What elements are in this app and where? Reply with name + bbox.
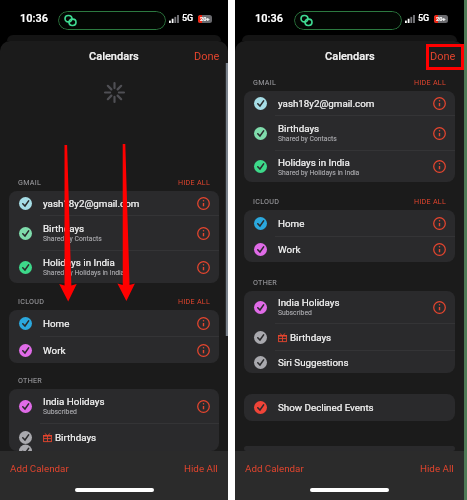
button[interactable]: Birthdays [9,216,219,250]
staticText: Work [278,244,301,255]
button[interactable]: Info [429,213,450,234]
button[interactable]: India Holidays [244,291,455,323]
button[interactable]: Info [193,396,214,417]
staticText: Shared by Contacts [43,235,102,243]
staticText: yash18y2@gmail.com [43,198,140,209]
button[interactable]: Info [193,223,214,244]
button[interactable]: Hide All [420,463,454,474]
button[interactable]: yash18y2@gmail.com [9,191,219,215]
button[interactable]: Done [194,50,220,63]
staticText: India Holidays [278,297,340,308]
other: Info [197,317,210,330]
button[interactable]: Work [244,237,455,262]
staticText: Add Calendar [10,463,69,474]
other: Info [197,227,210,240]
button[interactable]: Birthdays [244,116,455,150]
staticText: Done [194,50,220,63]
staticText: HIDE ALL [414,197,447,205]
other: Info [197,344,210,357]
staticText: ICLOUD [18,297,45,305]
button[interactable]: Info [429,239,450,260]
button[interactable]: Holidays in India [9,251,219,283]
other: Info [433,301,446,314]
staticText: 10:36 [255,12,283,25]
button[interactable]: Birthdays [244,324,455,350]
button[interactable]: HIDE ALL [414,78,447,86]
staticText: Home [278,218,305,229]
button[interactable]: Add Calendar [245,463,304,474]
button[interactable]: Info [429,93,450,114]
staticText: 10:36 [20,12,48,25]
button[interactable]: Info [193,313,214,334]
staticText: OTHER [253,278,278,286]
staticText: Shared by Holidays in India [43,269,125,277]
staticText: Siri Suggestions [278,357,349,368]
button[interactable]: Home [9,310,219,336]
button[interactable]: Home [244,210,455,236]
other: Info [433,217,446,230]
button[interactable]: Show Declined Events [244,394,455,421]
button[interactable]: Add Calendar [10,463,69,474]
other: Info [433,160,446,173]
staticText: Calendars [89,50,139,63]
other: Info [197,400,210,413]
other: Info [197,261,210,274]
staticText: HIDE ALL [178,297,211,305]
other: Info [197,197,210,210]
staticText: Home [43,318,70,329]
staticText: Birthdays [43,223,85,234]
button[interactable]: Siri Suggestions [244,351,455,373]
staticText: Subscribed [278,309,312,317]
button[interactable]: HIDE ALL [178,297,211,305]
button[interactable]: Info [193,340,214,361]
staticText: GMAIL [18,178,41,186]
staticText: GMAIL [253,78,276,86]
button[interactable]: Work [9,337,219,363]
staticText: Done [430,50,456,63]
other: Info [433,127,446,140]
button[interactable]: Holidays in India [244,151,455,182]
staticText: Birthdays [278,123,320,134]
button[interactable]: Birthdays [9,424,219,451]
button[interactable]: HIDE ALL [178,178,211,186]
staticText: Shared by Contacts [278,135,337,143]
staticText: Add Calendar [245,463,304,474]
staticText: OTHER [18,376,43,384]
button[interactable]: Info [429,123,450,144]
button[interactable]: Info [193,193,214,214]
staticText: yash18y2@gmail.com [278,98,375,109]
staticText: 20+ [200,16,210,23]
button[interactable]: Info [429,297,450,318]
other: Info [433,97,446,110]
staticText: 5G [182,13,194,24]
staticText: India Holidays [43,396,105,407]
button[interactable]: Info [429,156,450,177]
staticText: Holidays in India [278,157,350,168]
staticText: HIDE ALL [414,78,447,86]
button[interactable]: HIDE ALL [414,197,447,205]
staticText: Show Declined Events [278,402,374,413]
staticText: 5G [418,13,430,24]
button[interactable]: yash18y2@gmail.com [244,91,455,115]
other: Info [433,243,446,256]
staticText: Calendars [325,50,375,63]
button[interactable]: Done [430,50,456,63]
button[interactable]: Info [193,257,214,278]
staticText: Hide All [184,463,218,474]
staticText: 20+ [436,16,446,23]
staticText: ICLOUD [253,197,280,205]
button[interactable]: Hide All [184,463,218,474]
button[interactable]: India Holidays [9,389,219,423]
staticText: Holidays in India [43,257,115,268]
staticText: Birthdays [290,332,332,343]
staticText: HIDE ALL [178,178,211,186]
staticText: Work [43,345,66,356]
staticText: Hide All [420,463,454,474]
staticText: Birthdays [55,432,97,443]
staticText: Shared by Holidays in India [278,169,360,177]
staticText: Subscribed [43,408,77,416]
